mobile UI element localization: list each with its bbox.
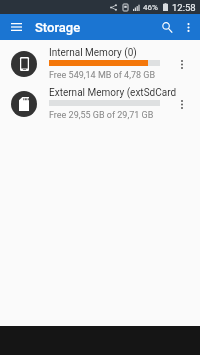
- staticText: Free 549,14 MB of 4,78 GB: [49, 70, 156, 81]
- button[interactable]: Internal Memory (0): [0, 43, 200, 83]
- staticText: Internal Memory (0): [49, 47, 137, 59]
- staticText: 12:58: [172, 2, 196, 13]
- staticText: 46%: [143, 3, 158, 12]
- staticText: Free 29,55 GB of 29,71 GB: [49, 110, 154, 121]
- button[interactable]: More options: [176, 14, 200, 40]
- button[interactable]: Item options: [176, 83, 200, 123]
- button[interactable]: Item options: [176, 43, 200, 83]
- button[interactable]: Search: [154, 14, 176, 40]
- button[interactable]: Open navigation drawer: [0, 14, 32, 40]
- staticText: Storage: [35, 20, 81, 35]
- staticText: External Memory (extSdCard): [49, 87, 176, 99]
- button[interactable]: External Memory (extSdCard): [0, 83, 200, 123]
